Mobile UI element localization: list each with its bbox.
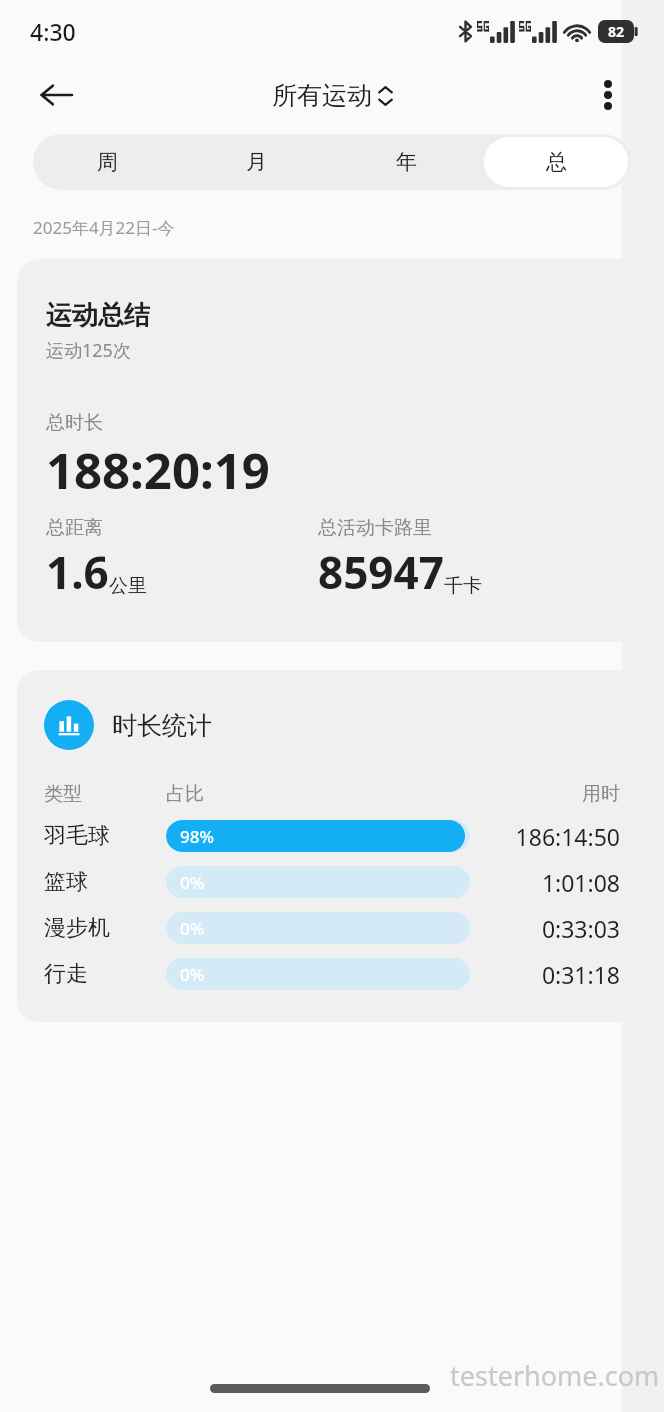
staticText: 0:31:18: [470, 959, 620, 990]
staticText: 所有运动: [272, 80, 372, 111]
staticText: 月: [246, 149, 267, 175]
staticText: 186:14:50: [470, 821, 620, 852]
button[interactable]: 羽毛球: [44, 820, 620, 852]
button[interactable]: 周: [36, 137, 179, 187]
staticText: 85947: [318, 542, 444, 602]
staticText: 0:33:03: [470, 913, 620, 944]
staticText: 周: [97, 149, 118, 175]
staticText: 行走: [44, 960, 166, 988]
staticText: testerhome.com: [450, 1357, 660, 1394]
staticText: 82: [608, 22, 625, 41]
staticText: 188:20:19: [46, 437, 270, 504]
staticText: 总: [546, 149, 567, 175]
staticText: 羽毛球: [44, 822, 166, 850]
staticText: 总活动卡路里: [318, 516, 432, 540]
button[interactable]: 漫步机: [44, 912, 620, 944]
staticText: 年: [396, 149, 417, 175]
staticText: 占比: [166, 782, 470, 806]
button[interactable]: 所有运动: [266, 76, 399, 115]
staticText: 千卡: [444, 574, 482, 598]
staticText: 用时: [470, 782, 620, 806]
staticText: 时长统计: [112, 710, 212, 741]
staticText: 运动总结: [46, 299, 150, 332]
staticText: 4:30: [30, 16, 76, 47]
button[interactable]: 行走: [44, 958, 620, 990]
staticText: 运动125次: [46, 338, 131, 363]
staticText: 1:01:08: [470, 867, 620, 898]
staticText: 0%: [180, 963, 205, 986]
button[interactable]: 总: [484, 137, 628, 187]
staticText: 类型: [44, 782, 166, 806]
button[interactable]: Back: [28, 67, 84, 123]
staticText: 总时长: [46, 411, 103, 435]
staticText: 98%: [180, 825, 214, 848]
staticText: 总距离: [46, 516, 103, 540]
button[interactable]: 年: [334, 137, 478, 187]
button[interactable]: 月: [185, 137, 328, 187]
staticText: 0%: [180, 917, 205, 940]
button[interactable]: More options: [582, 69, 634, 121]
staticText: 0%: [180, 871, 205, 894]
staticText: 漫步机: [44, 914, 166, 942]
staticText: 篮球: [44, 868, 166, 896]
staticText: 2025年4月22日-今: [33, 216, 175, 239]
staticText: 1.6: [46, 542, 109, 602]
button[interactable]: 篮球: [44, 866, 620, 898]
staticText: 公里: [109, 574, 147, 598]
